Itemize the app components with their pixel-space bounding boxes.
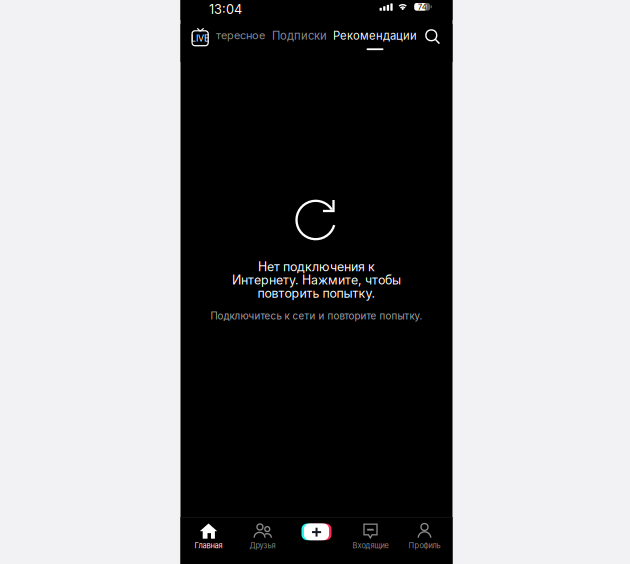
button[interactable]: Рекомендации <box>328 25 422 46</box>
staticText: повторить попытку. <box>257 286 375 301</box>
button[interactable]: Входящие <box>343 523 397 555</box>
staticText: Главная <box>194 541 222 550</box>
staticText: Подписки <box>272 29 327 42</box>
staticText: Интернету. Нажмите, чтобы <box>232 272 401 287</box>
staticText: тересное <box>216 29 265 42</box>
staticText: Входящие <box>352 541 388 550</box>
button[interactable]: Главная <box>181 523 235 555</box>
button[interactable]: Подписки <box>267 25 332 46</box>
button[interactable]: Create <box>289 523 343 555</box>
staticText: Профиль <box>408 541 440 550</box>
staticText: Подключитесь к сети и повторите попытку. <box>210 310 422 322</box>
staticText: Друзья <box>249 541 275 550</box>
staticText: Нет подключения к <box>258 259 375 274</box>
staticText: 13:04 <box>209 1 242 17</box>
button[interactable]: Нет подключения к <box>180 261 452 295</box>
button[interactable]: Друзья <box>235 523 289 555</box>
staticText: 74 <box>418 2 427 11</box>
staticText: LIVE <box>191 33 209 43</box>
button[interactable]: Search <box>421 25 445 49</box>
button[interactable]: Профиль <box>397 523 451 555</box>
staticText: Рекомендации <box>333 29 417 42</box>
